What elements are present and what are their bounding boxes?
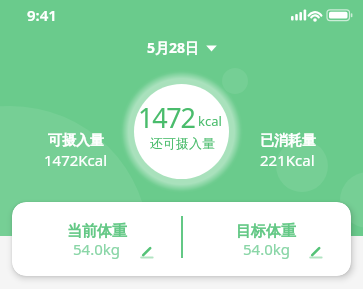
button[interactable]: 1472 [134, 84, 229, 179]
button[interactable]: 当前体重 [12, 202, 181, 276]
staticText: 1472Kcal [44, 150, 108, 170]
staticText: 可摄入量 [48, 132, 104, 150]
staticText: 目标体重 [236, 222, 296, 241]
staticText: 5月28日 [147, 38, 200, 57]
staticText: 54.0kg [73, 239, 120, 259]
staticText: 还可摄入量 [150, 135, 215, 151]
staticText: 当前体重 [67, 222, 127, 241]
staticText: kcal [198, 112, 222, 130]
staticText: 9:41 [27, 5, 57, 25]
button[interactable]: 5月28日 [0, 38, 363, 57]
staticText: 已消耗量 [260, 132, 316, 150]
staticText: 1472 [138, 99, 195, 136]
button[interactable]: 目标体重 [181, 202, 351, 276]
staticText: 54.0kg [243, 239, 290, 259]
staticText: 221Kcal [260, 150, 315, 170]
